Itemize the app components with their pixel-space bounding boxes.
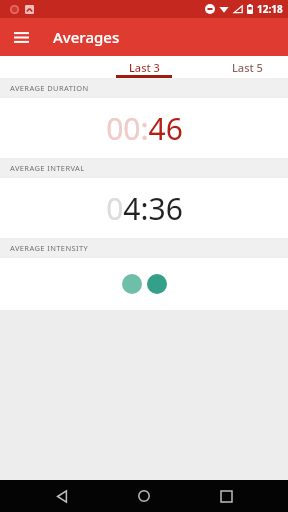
button[interactable]: Back <box>42 480 82 512</box>
staticText: AVERAGE INTENSITY <box>10 243 89 253</box>
button[interactable]: Last 3 <box>102 56 186 78</box>
button[interactable] <box>0 258 288 310</box>
staticText: AVERAGE INTERVAL <box>10 163 85 173</box>
staticText: AVERAGE DURATION <box>10 83 89 93</box>
button[interactable]: Last 5 <box>232 56 288 78</box>
staticText: Last 5 <box>232 60 263 75</box>
staticText: 12:18 <box>257 2 283 16</box>
button[interactable]: Open navigation drawer <box>7 23 35 51</box>
button[interactable]: 04:36 <box>0 178 288 238</box>
button[interactable]: 00:46 <box>0 98 288 158</box>
staticText: 00:46 <box>106 108 183 149</box>
staticText: Averages <box>53 27 120 47</box>
button[interactable]: Recent apps <box>206 480 246 512</box>
button[interactable]: Home <box>124 480 164 512</box>
staticText: Last 3 <box>129 60 160 75</box>
staticText: 04:36 <box>106 188 183 229</box>
